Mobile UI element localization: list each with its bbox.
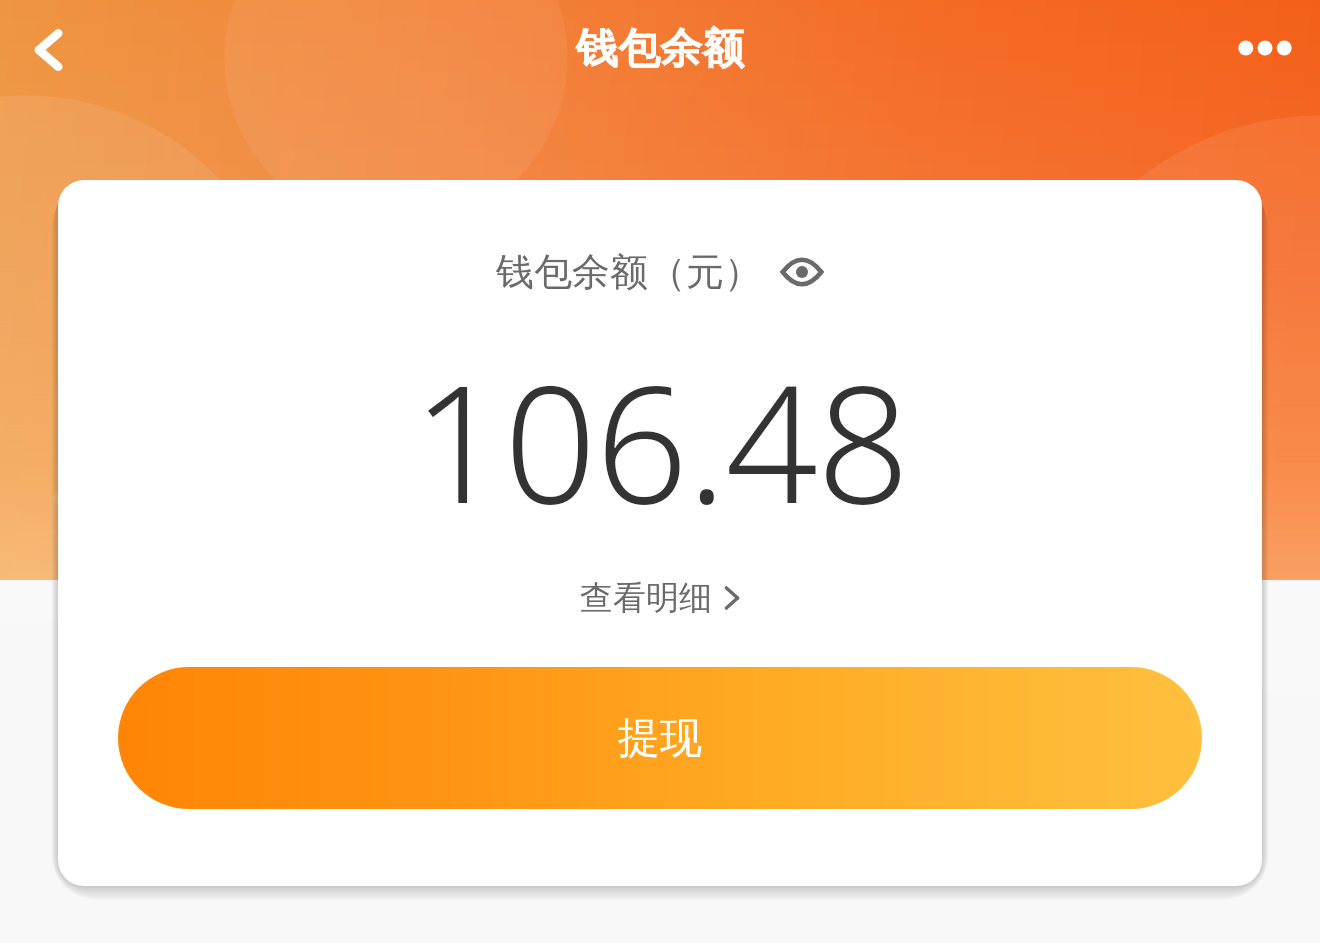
button[interactable]: 查看明细 — [566, 569, 754, 627]
button[interactable]: 钱包余额（元） — [486, 242, 834, 302]
staticText: 提现 — [618, 712, 702, 765]
button[interactable]: Back — [14, 11, 92, 89]
staticText: 钱包余额（元） — [496, 248, 762, 296]
button[interactable]: More options — [1222, 5, 1308, 91]
staticText: 106.48 — [412, 330, 909, 551]
button[interactable]: 提现 — [118, 667, 1202, 809]
staticText: 钱包余额 — [576, 23, 744, 76]
staticText: 查看明细 — [580, 577, 712, 619]
